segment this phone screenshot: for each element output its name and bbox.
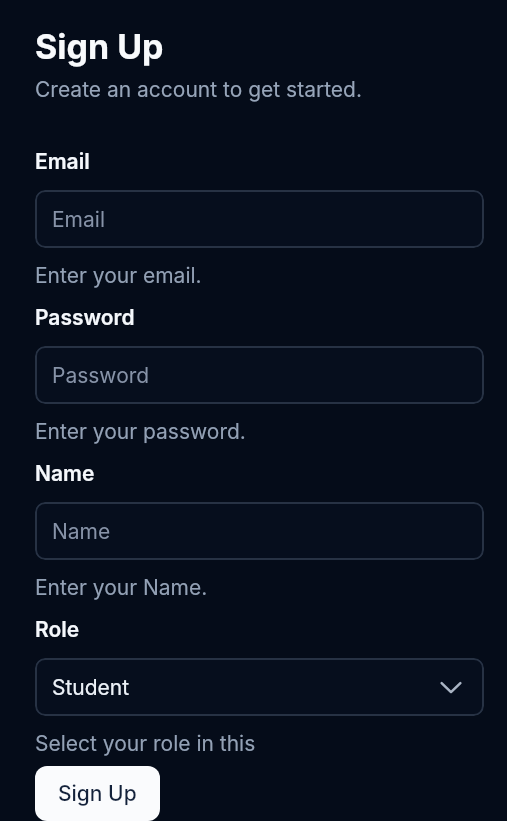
staticText: Sign Up [58, 781, 137, 806]
button[interactable]: Student [35, 658, 484, 716]
staticText: Name [35, 461, 95, 486]
button[interactable]: Email [35, 190, 484, 248]
staticText: Password [35, 305, 135, 330]
staticText: Name [52, 519, 111, 544]
staticText: Student [52, 675, 130, 700]
staticText: Email [35, 149, 90, 174]
staticText: Password [52, 363, 150, 388]
staticText: Role [35, 617, 80, 642]
staticText: Email [52, 207, 105, 232]
staticText: Create an account to get started. [35, 77, 362, 102]
staticText: Select your role in this [35, 731, 256, 756]
staticText: Enter your email. [35, 263, 202, 288]
button[interactable]: Password [35, 346, 484, 404]
button[interactable]: Sign Up [35, 766, 160, 821]
button[interactable]: Name [35, 502, 484, 560]
staticText: Enter your password. [35, 419, 246, 444]
staticText: Enter your Name. [35, 575, 208, 600]
staticText: Sign Up [35, 26, 164, 67]
